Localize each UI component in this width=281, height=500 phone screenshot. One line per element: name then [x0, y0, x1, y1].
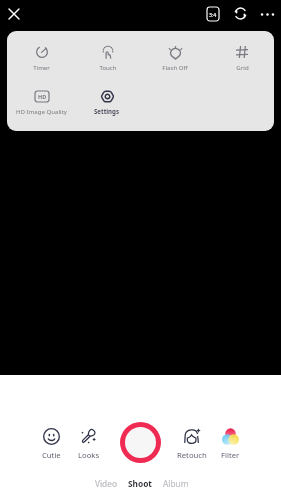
staticText: Filter	[221, 450, 240, 458]
button[interactable]: Timer	[8, 44, 74, 74]
button[interactable]: Close	[0, 0, 28, 28]
staticText: Settings	[94, 107, 119, 115]
staticText: Looks	[78, 450, 100, 458]
button[interactable]: Looks	[64, 426, 114, 458]
button[interactable]: HD	[8, 88, 74, 118]
staticText: Video	[95, 478, 117, 489]
button[interactable]: More options	[253, 0, 281, 28]
staticText: Cutie	[42, 450, 61, 458]
button[interactable]: Flash Off	[142, 44, 208, 74]
staticText: Retouch	[177, 450, 207, 458]
button[interactable]: Shoot	[123, 475, 157, 491]
button[interactable]: Video	[89, 475, 123, 491]
button[interactable]: Retouch	[167, 426, 217, 458]
staticText: HD Image Quality	[16, 107, 67, 115]
staticText: Flash Off	[162, 63, 188, 71]
button[interactable]: Aspect ratio 3 to 4	[199, 0, 227, 28]
staticText: Timer	[33, 63, 50, 71]
button[interactable]: Grid	[209, 44, 274, 74]
button[interactable]: Filter	[205, 426, 255, 458]
button[interactable]: Album	[159, 475, 193, 491]
staticText: Touch	[99, 63, 117, 71]
button[interactable]: Settings	[73, 88, 139, 118]
staticText: Album	[163, 478, 189, 489]
button[interactable]: Touch	[75, 44, 141, 74]
button[interactable]: Shutter	[120, 422, 161, 463]
button[interactable]: Cutie	[26, 426, 76, 458]
staticText: Shoot	[128, 478, 152, 489]
staticText: HD	[38, 93, 47, 100]
staticText: Grid	[236, 63, 249, 71]
button[interactable]: Switch camera	[226, 0, 254, 27]
staticText: 3:4	[209, 11, 217, 18]
